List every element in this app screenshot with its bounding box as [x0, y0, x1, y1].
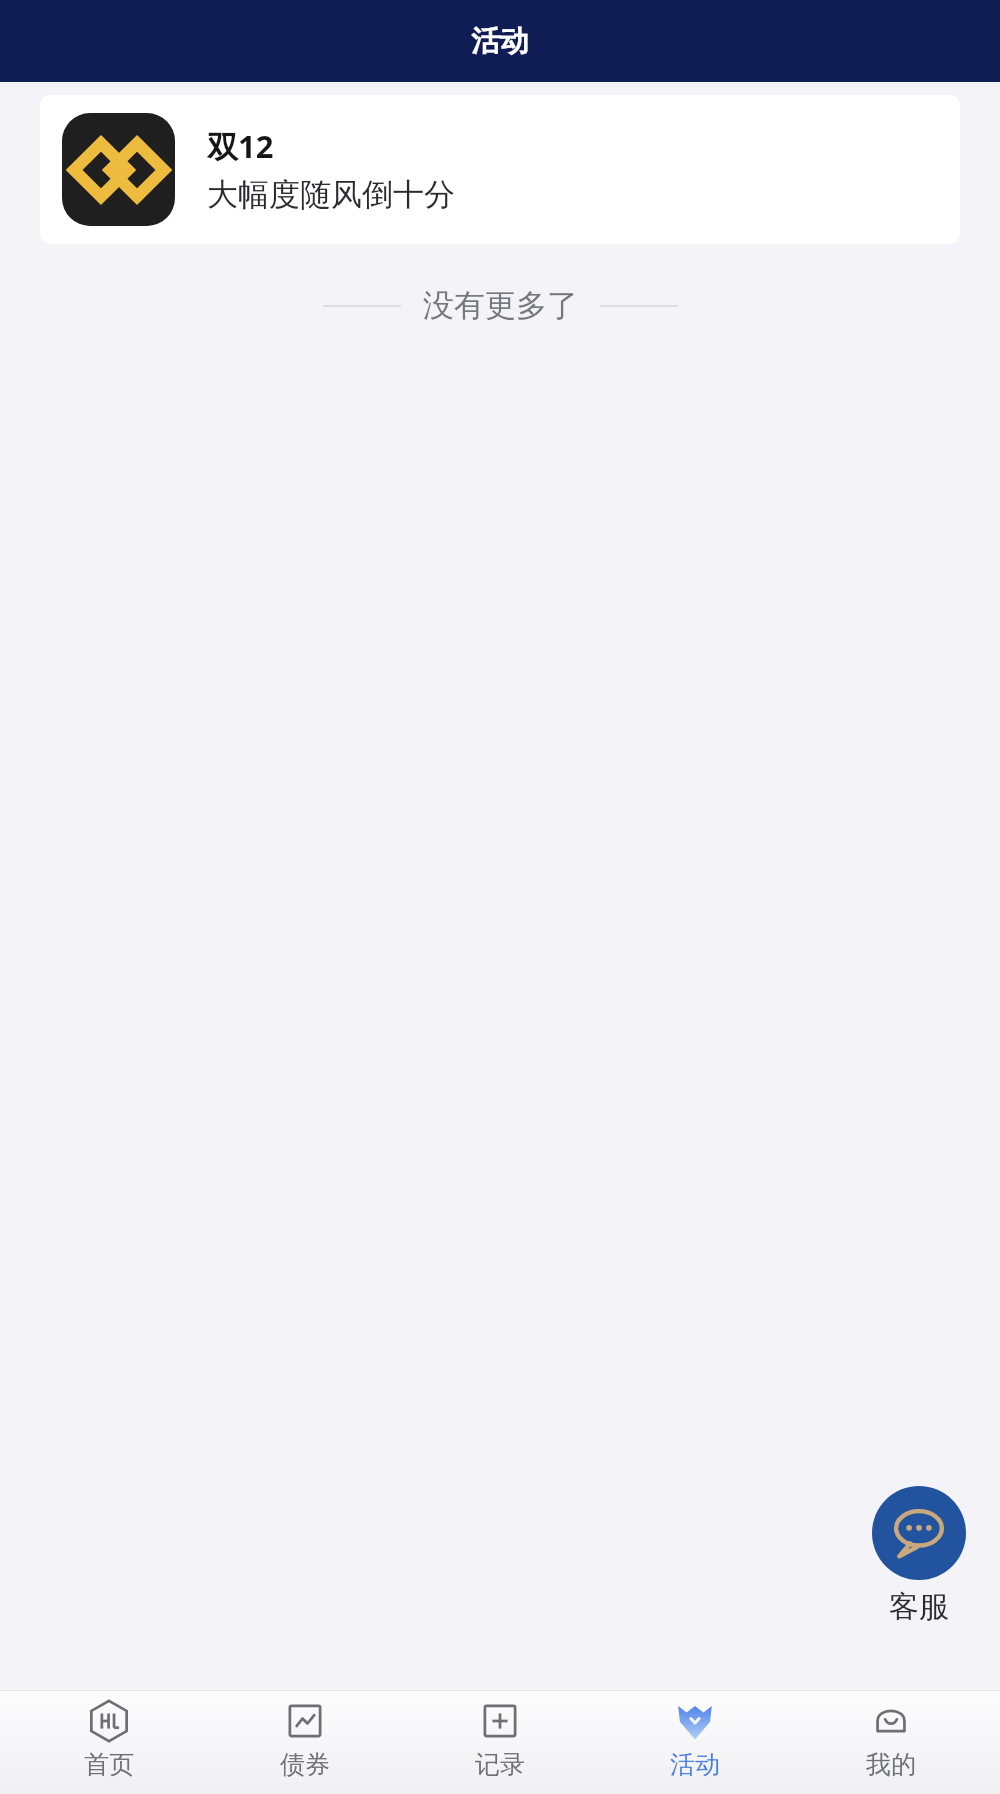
- button[interactable]: 我的: [805, 1700, 977, 1794]
- staticText: 没有更多了: [423, 286, 578, 325]
- button[interactable]: 双12: [40, 95, 960, 244]
- staticText: 活动: [471, 23, 529, 60]
- staticText: 首页: [84, 1749, 134, 1780]
- staticText: 债券: [280, 1749, 330, 1780]
- button[interactable]: 活动: [609, 1700, 781, 1794]
- staticText: 客服: [889, 1588, 949, 1626]
- button[interactable]: 客服: [866, 1480, 972, 1632]
- staticText: 双12: [207, 125, 274, 167]
- staticText: 记录: [475, 1749, 525, 1780]
- button[interactable]: 首页: [23, 1700, 195, 1794]
- button[interactable]: 记录: [414, 1700, 586, 1794]
- button[interactable]: 债券: [219, 1700, 391, 1794]
- staticText: 大幅度随风倒十分: [207, 175, 455, 214]
- staticText: 活动: [670, 1749, 720, 1780]
- staticText: 我的: [866, 1749, 916, 1780]
- other: 客服: [872, 1486, 966, 1580]
